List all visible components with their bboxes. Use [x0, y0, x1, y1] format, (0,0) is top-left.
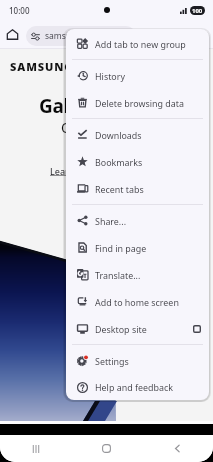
button[interactable]: Help and feedback [66, 374, 209, 400]
button[interactable]: Settings [66, 347, 209, 374]
button[interactable]: Add tab to new group [66, 30, 209, 57]
button[interactable]: Add to home screen [66, 288, 209, 315]
staticText: Add to home screen [95, 296, 179, 308]
button[interactable]: Learn more [50, 165, 100, 177]
button[interactable]: Downloads [66, 121, 209, 148]
staticText: Delete browsing data [95, 97, 184, 109]
staticText: samsung.com [45, 30, 102, 42]
button[interactable]: History [66, 62, 209, 89]
staticText: Desktop site [95, 323, 147, 335]
staticText: Settings [95, 355, 129, 367]
staticText: Downloads [95, 129, 142, 141]
staticText: Add tab to new group [95, 38, 186, 50]
staticText: Translate... [95, 269, 141, 281]
button[interactable]: Desktop site [66, 315, 209, 342]
button[interactable]: Find in page [66, 234, 209, 261]
staticText: 10:00 [9, 5, 30, 16]
button[interactable]: Bookmarks [66, 148, 209, 175]
staticText: Share... [95, 215, 127, 227]
button[interactable]: Recent tabs [66, 175, 209, 202]
button[interactable]: Translate... [66, 261, 209, 288]
staticText: Bookmarks [95, 156, 143, 168]
staticText: Find in page [95, 242, 147, 254]
staticText: SAMSUNG [10, 59, 74, 74]
button[interactable]: Home [4, 26, 21, 43]
staticText: Galaxy [39, 93, 102, 119]
button[interactable]: Share... [66, 207, 209, 234]
staticText: Recent tabs [95, 183, 144, 195]
staticText: 100 [192, 7, 203, 15]
button[interactable]: Recent apps [0, 435, 71, 462]
staticText: Q6 [61, 118, 80, 137]
button[interactable]: samsung.com [26, 26, 136, 46]
staticText: History [95, 70, 125, 82]
staticText: Help and feedback [95, 381, 173, 393]
button[interactable]: Back [142, 435, 213, 462]
button[interactable]: Delete browsing data [66, 89, 209, 116]
staticText: Learn more [50, 165, 100, 177]
button[interactable]: Home [71, 435, 142, 462]
